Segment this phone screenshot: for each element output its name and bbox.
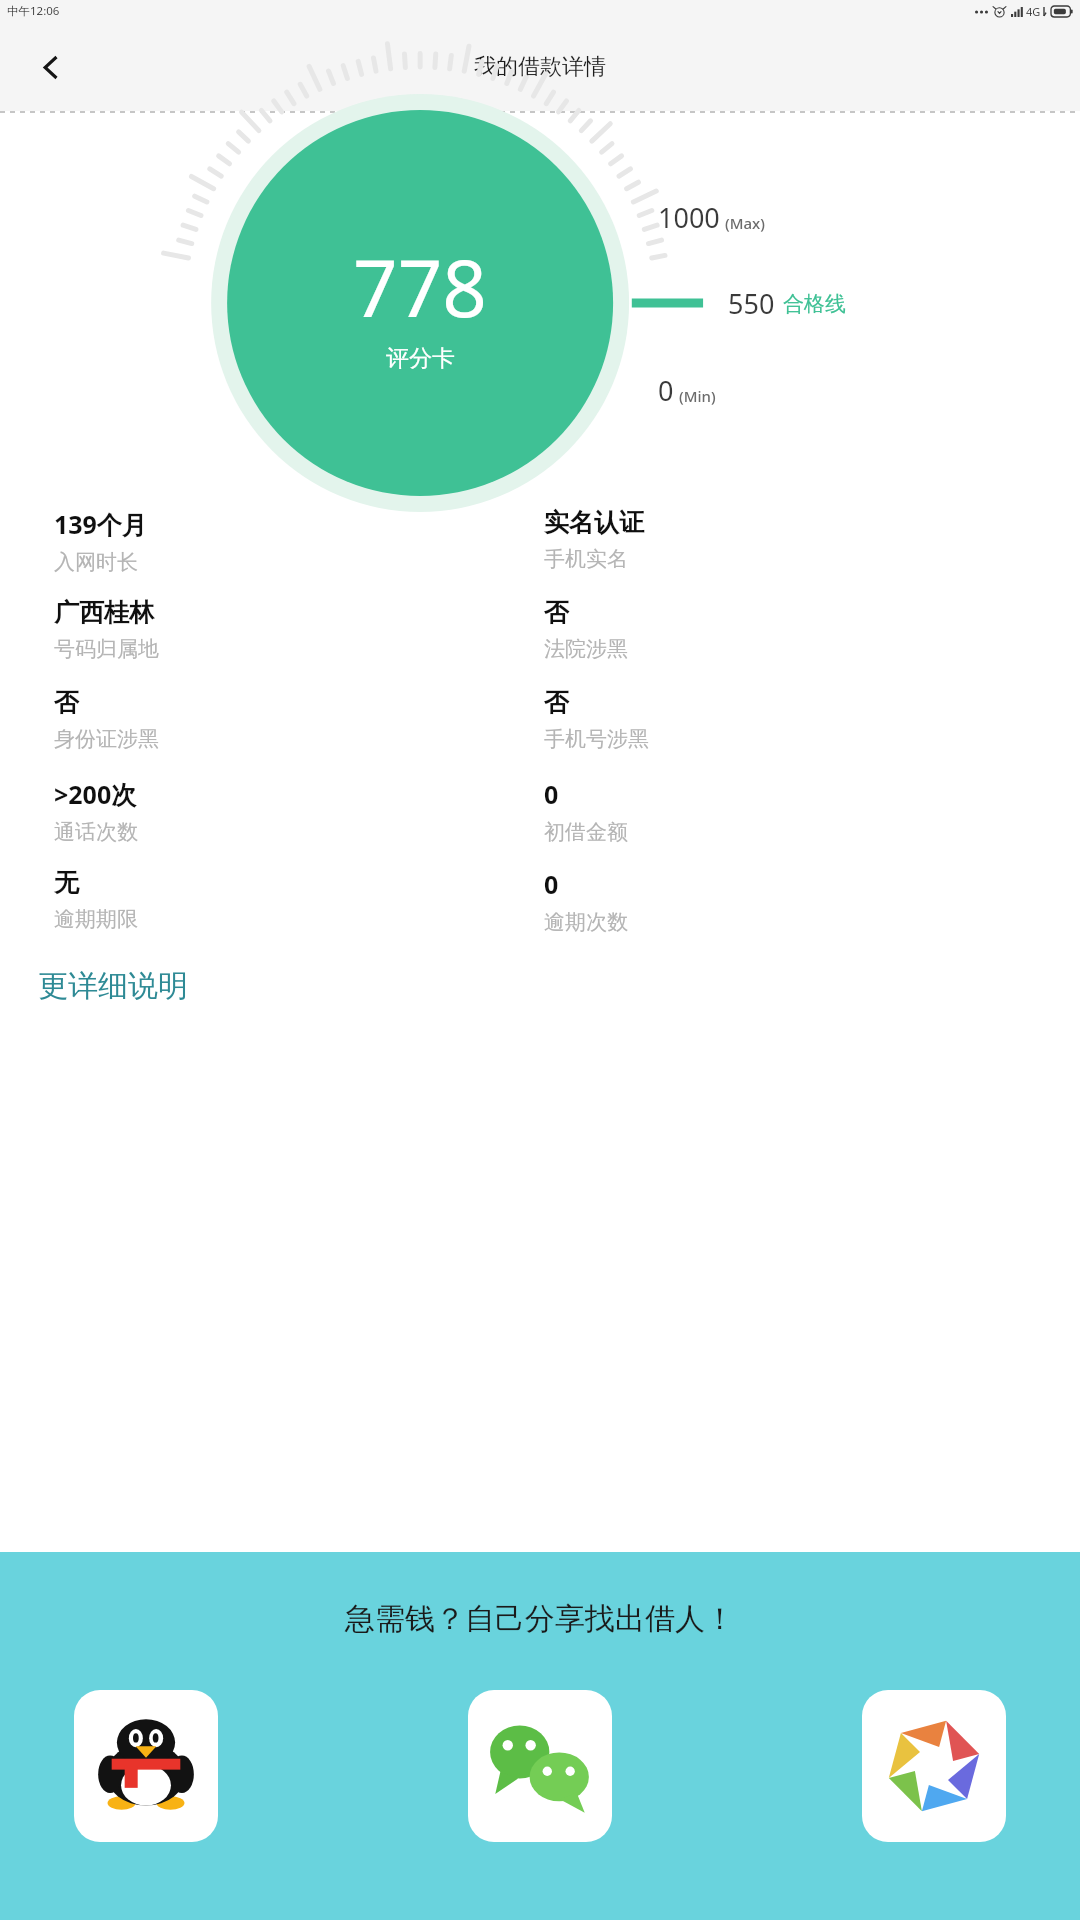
staticText: 逾期次数 bbox=[544, 909, 628, 935]
staticText: 我的借款详情 bbox=[474, 53, 606, 81]
button[interactable]: Share to QQ bbox=[74, 1690, 218, 1842]
staticText: 0 bbox=[544, 777, 559, 811]
staticText: 更详细说明 bbox=[38, 967, 188, 1005]
staticText: 广西桂林 bbox=[54, 597, 154, 628]
staticText: 入网时长 bbox=[54, 549, 138, 575]
staticText: 评分卡 bbox=[386, 344, 455, 373]
staticText: 手机号涉黑 bbox=[544, 726, 649, 752]
staticText: 否 bbox=[54, 687, 79, 718]
staticText: 实名认证 bbox=[544, 507, 644, 538]
staticText: 139个月 bbox=[54, 507, 147, 541]
staticText: 逾期期限 bbox=[54, 906, 138, 932]
staticText: 1000 bbox=[658, 199, 720, 236]
staticText: 法院涉黑 bbox=[544, 636, 628, 662]
staticText: 号码归属地 bbox=[54, 636, 159, 662]
staticText: 否 bbox=[544, 597, 569, 628]
button[interactable]: Share to QZone bbox=[862, 1690, 1006, 1842]
staticText: 否 bbox=[544, 687, 569, 718]
staticText: 急需钱？自己分享找出借人！ bbox=[345, 1600, 735, 1638]
staticText: 初借金额 bbox=[544, 819, 628, 845]
staticText: 无 bbox=[54, 867, 79, 898]
staticText: 0 bbox=[658, 372, 674, 409]
staticText: 中午12:06 bbox=[7, 3, 60, 19]
staticText: 通话次数 bbox=[54, 819, 138, 845]
staticText: >200次 bbox=[54, 777, 137, 811]
staticText: 身份证涉黑 bbox=[54, 726, 159, 752]
staticText: 4G bbox=[1026, 4, 1041, 19]
staticText: 手机实名 bbox=[544, 546, 628, 572]
staticText: (Max) bbox=[725, 213, 765, 233]
button[interactable]: Share to WeChat bbox=[468, 1690, 612, 1842]
staticText: 合格线 bbox=[783, 291, 846, 317]
staticText: 0 bbox=[544, 867, 559, 901]
staticText: (Min) bbox=[679, 386, 716, 406]
staticText: 550 bbox=[728, 285, 775, 322]
button[interactable]: Back bbox=[14, 31, 86, 103]
button[interactable]: 急需钱？自己分享找出借人！ bbox=[0, 1552, 1080, 1920]
button[interactable]: 更详细说明 bbox=[38, 967, 188, 1005]
staticText: 778 bbox=[353, 234, 487, 340]
